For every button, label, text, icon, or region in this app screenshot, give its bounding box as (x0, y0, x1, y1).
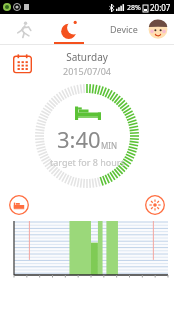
staticText: 2015/07/04 (63, 65, 111, 77)
staticText: 3:40 (57, 124, 101, 154)
button[interactable]: Pick date (13, 54, 32, 73)
button[interactable]: Bed time (9, 195, 29, 215)
button[interactable]: Sleep (46, 14, 92, 44)
staticText: 28% (127, 3, 141, 13)
staticText: Device (110, 23, 138, 35)
staticText: MIN (101, 140, 118, 151)
button[interactable]: Device (106, 19, 142, 39)
button[interactable]: Wake time (145, 195, 165, 215)
button[interactable]: Steps (0, 14, 46, 44)
staticText: Saturday (66, 50, 108, 64)
staticText: 20:07 (150, 2, 171, 13)
staticText: target for 8 hours (50, 156, 125, 168)
button[interactable]: Profile (148, 19, 168, 39)
